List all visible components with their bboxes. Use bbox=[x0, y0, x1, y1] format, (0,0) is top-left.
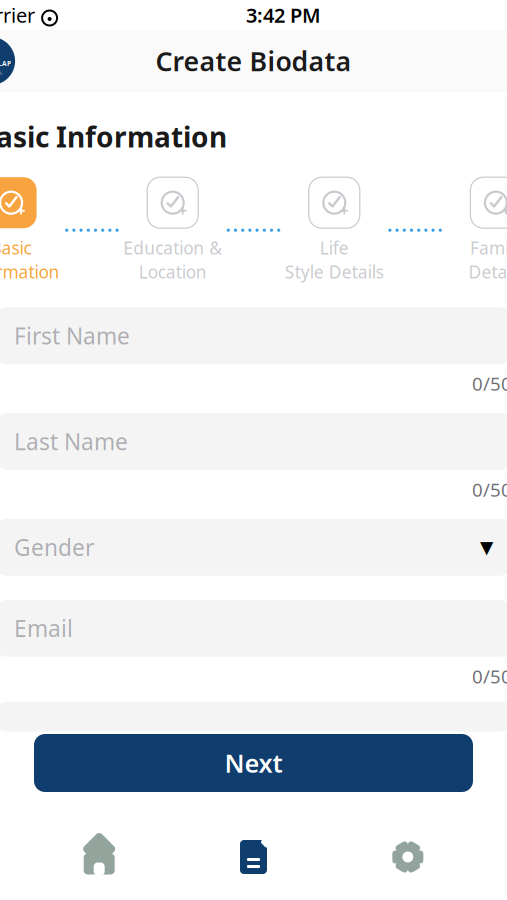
staticText: Basic bbox=[0, 236, 32, 259]
staticText: 0/50 bbox=[472, 664, 507, 689]
staticText: Details bbox=[468, 260, 507, 283]
button[interactable]: Email bbox=[0, 600, 507, 657]
staticText: Next bbox=[224, 746, 282, 780]
staticText: 0/50 bbox=[472, 371, 507, 396]
staticText: First Name bbox=[14, 321, 130, 351]
button[interactable]: Biodata bbox=[176, 838, 331, 876]
staticText: Email bbox=[14, 613, 73, 643]
staticText: Create Biodata bbox=[155, 43, 351, 79]
button[interactable]: Last Name bbox=[0, 413, 507, 470]
staticText: Carrier bbox=[0, 2, 35, 28]
staticText: BIODATA bbox=[0, 70, 2, 77]
staticText: Gender bbox=[14, 532, 94, 562]
staticText: Life bbox=[320, 236, 349, 259]
staticText: Information bbox=[0, 260, 60, 283]
button[interactable]: Home bbox=[22, 838, 176, 876]
staticText: Basic Information bbox=[0, 118, 227, 155]
button[interactable]: Next bbox=[34, 734, 473, 792]
staticText: ▼ bbox=[480, 537, 493, 557]
button[interactable]: Gender bbox=[0, 519, 507, 576]
staticText: 0/50 bbox=[472, 477, 507, 502]
staticText: Style Details bbox=[285, 260, 384, 283]
staticText: Location bbox=[139, 260, 207, 283]
button[interactable]: First Name bbox=[0, 307, 507, 364]
staticText: 3:42 PM bbox=[246, 2, 321, 28]
button[interactable]: App logo bbox=[0, 37, 15, 85]
staticText: MATCHELAP bbox=[0, 59, 11, 68]
button[interactable]: Settings bbox=[331, 838, 485, 876]
staticText: Education & bbox=[123, 236, 222, 259]
staticText: Last Name bbox=[14, 426, 128, 457]
staticText: Family bbox=[470, 236, 507, 259]
